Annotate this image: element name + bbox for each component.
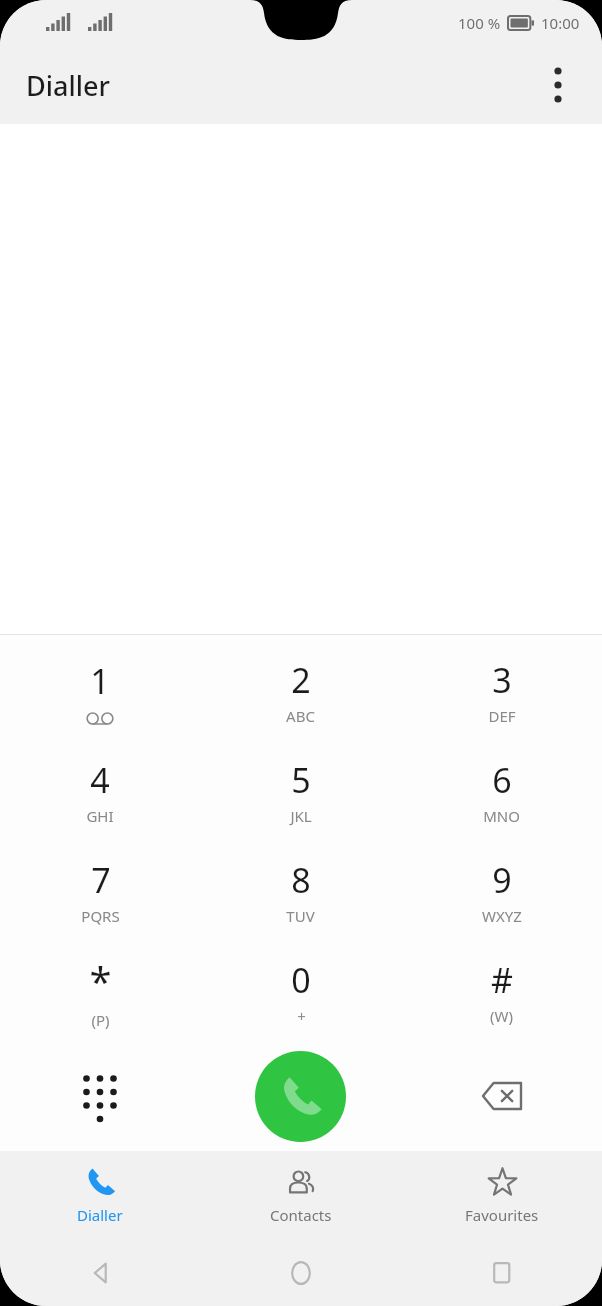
staticText: Dialler <box>26 67 110 104</box>
button[interactable]: Favourites <box>401 1151 602 1240</box>
staticText: Favourites <box>465 1205 539 1225</box>
button[interactable]: Contacts <box>200 1151 401 1240</box>
staticText: (P) <box>91 1010 110 1030</box>
staticText: Contacts <box>270 1205 332 1225</box>
button[interactable]: 4 <box>0 741 200 841</box>
staticText: 10:00 <box>541 13 580 33</box>
staticText: 1 <box>90 658 110 704</box>
staticText: * <box>89 953 112 1007</box>
staticText: 2 <box>291 657 311 703</box>
button[interactable]: 2 <box>200 641 401 741</box>
staticText: DEF <box>488 706 516 726</box>
button[interactable]: * <box>0 941 200 1041</box>
button[interactable]: Show keypad <box>0 1041 200 1151</box>
button[interactable]: Call <box>255 1051 346 1142</box>
staticText: + <box>297 1006 306 1026</box>
button[interactable]: 3 <box>401 641 602 741</box>
staticText: Dialler <box>77 1205 123 1225</box>
staticText: WXYZ <box>482 906 522 926</box>
staticText: TUV <box>286 906 315 926</box>
button[interactable]: 6 <box>401 741 602 841</box>
staticText: 8 <box>291 857 311 903</box>
button[interactable]: More options <box>534 61 582 109</box>
button[interactable]: Dialler <box>0 1151 200 1240</box>
staticText: (W) <box>490 1006 513 1026</box>
staticText: 4 <box>90 757 110 803</box>
staticText: ABC <box>286 706 315 726</box>
staticText: 100 % <box>458 13 501 33</box>
staticText: GHI <box>86 806 114 826</box>
button[interactable]: 7 <box>0 841 200 941</box>
button[interactable]: Delete <box>401 1041 602 1151</box>
staticText: 0 <box>291 957 311 1003</box>
button[interactable]: Recents <box>401 1240 602 1306</box>
button[interactable]: # <box>401 941 602 1041</box>
staticText: 3 <box>492 657 512 703</box>
staticText: MNO <box>483 806 520 826</box>
staticText: 7 <box>91 857 111 903</box>
staticText: PQRS <box>81 906 120 926</box>
staticText: # <box>491 957 513 1003</box>
staticText: 9 <box>492 857 512 903</box>
staticText: JKL <box>290 806 312 826</box>
button[interactable]: 5 <box>200 741 401 841</box>
staticText: 6 <box>492 757 512 803</box>
button[interactable]: 8 <box>200 841 401 941</box>
staticText: 5 <box>291 757 311 803</box>
button[interactable]: 9 <box>401 841 602 941</box>
button[interactable]: 0 <box>200 941 401 1041</box>
button[interactable]: Back <box>0 1240 200 1306</box>
button[interactable]: Home <box>200 1240 401 1306</box>
button[interactable]: 1 <box>0 641 200 741</box>
